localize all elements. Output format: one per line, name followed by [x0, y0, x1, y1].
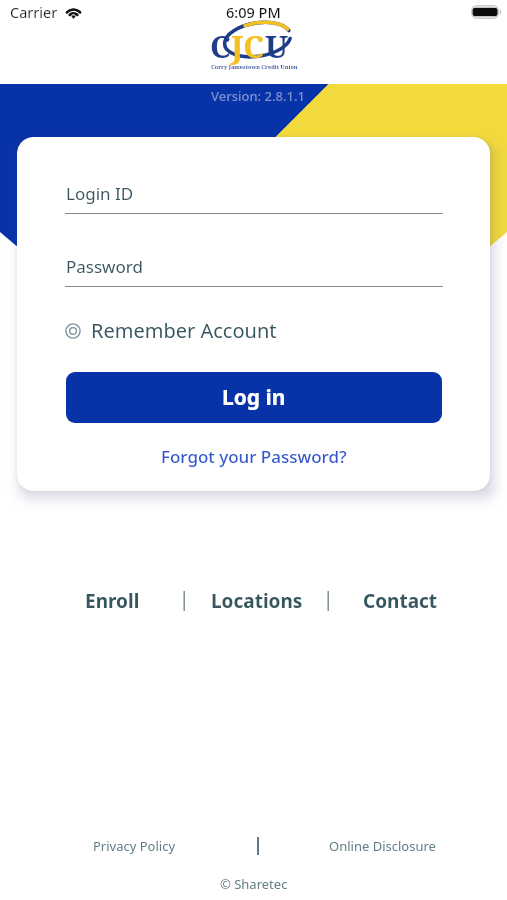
other: Battery — [471, 5, 501, 19]
staticText: Carrier — [10, 2, 58, 22]
staticText: Locations — [211, 588, 303, 610]
staticText: Remember Account — [91, 317, 277, 344]
staticText: © Sharetec — [220, 875, 288, 893]
button[interactable]: Forgot your Password? — [153, 443, 355, 470]
staticText: Online Disclosure — [329, 837, 436, 855]
button[interactable]: Locations — [207, 582, 307, 616]
staticText: 6:09 PM — [226, 2, 281, 22]
staticText: | — [323, 586, 334, 612]
staticText: Login ID — [66, 182, 134, 205]
button[interactable]: Contact — [359, 582, 442, 616]
staticText: C — [210, 25, 231, 67]
staticText: | — [179, 586, 190, 612]
button[interactable]: Log in — [66, 372, 442, 423]
button[interactable]: Password — [65, 250, 443, 287]
staticText: Version: 2.8.1.1 — [211, 87, 305, 105]
button[interactable]: Remember Account — [65, 317, 283, 344]
staticText: Contact — [363, 588, 438, 610]
button[interactable]: Online Disclosure — [325, 833, 440, 859]
staticText: JC — [231, 25, 265, 67]
staticText: Log in — [222, 383, 286, 412]
staticText: Enroll — [85, 588, 140, 610]
staticText: Password — [66, 255, 143, 278]
button[interactable]: Login ID — [65, 177, 443, 214]
staticText: U — [265, 25, 289, 67]
button[interactable]: Privacy Policy — [89, 833, 180, 859]
staticText: Forgot your Password? — [161, 445, 347, 468]
button[interactable]: Enroll — [81, 582, 144, 616]
staticText: Privacy Policy — [93, 837, 176, 855]
staticText: Corry Jamestown Credit Union — [211, 63, 298, 71]
